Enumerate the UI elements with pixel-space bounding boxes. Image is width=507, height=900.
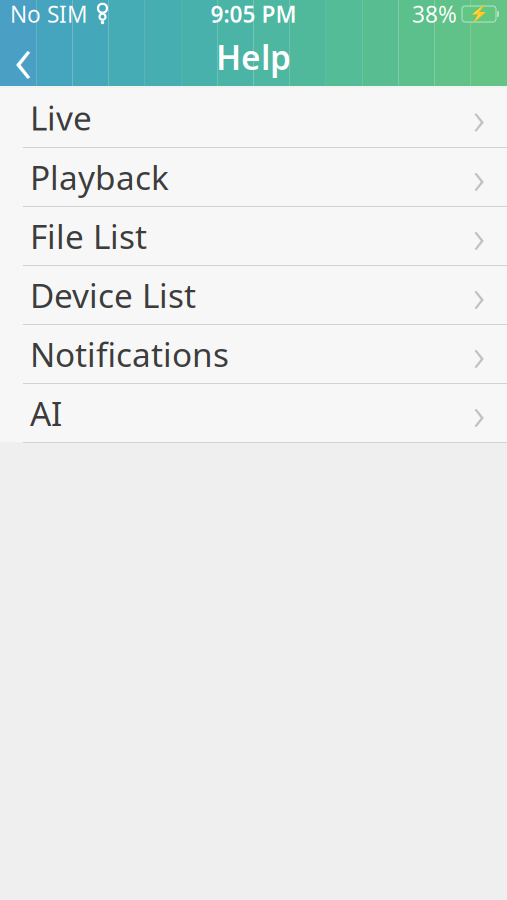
button[interactable]: AI [0, 383, 507, 442]
button[interactable]: Back [0, 28, 46, 86]
button[interactable]: File List [0, 206, 507, 265]
staticText: › [473, 87, 485, 148]
staticText: › [473, 265, 485, 325]
staticText: Playback [30, 155, 169, 199]
staticText: 9:05 PM [210, 0, 296, 29]
button[interactable]: Live [0, 88, 507, 147]
staticText: ⚡ [469, 5, 489, 23]
staticText: ‹ [14, 11, 32, 103]
button[interactable]: Notifications [0, 324, 507, 383]
staticText: AI [30, 391, 62, 435]
staticText: File List [30, 214, 147, 258]
button[interactable]: Playback [0, 147, 507, 206]
staticText: › [473, 324, 485, 384]
staticText: › [473, 383, 485, 443]
staticText: Device List [30, 273, 196, 317]
staticText: Live [30, 95, 92, 140]
staticText: Help [216, 35, 291, 79]
staticText: Notifications [30, 332, 229, 376]
staticText: › [473, 147, 485, 207]
staticText: 38% [412, 0, 457, 29]
staticText: No SIM [10, 0, 88, 29]
button[interactable]: Device List [0, 265, 507, 324]
staticText: › [473, 206, 485, 266]
